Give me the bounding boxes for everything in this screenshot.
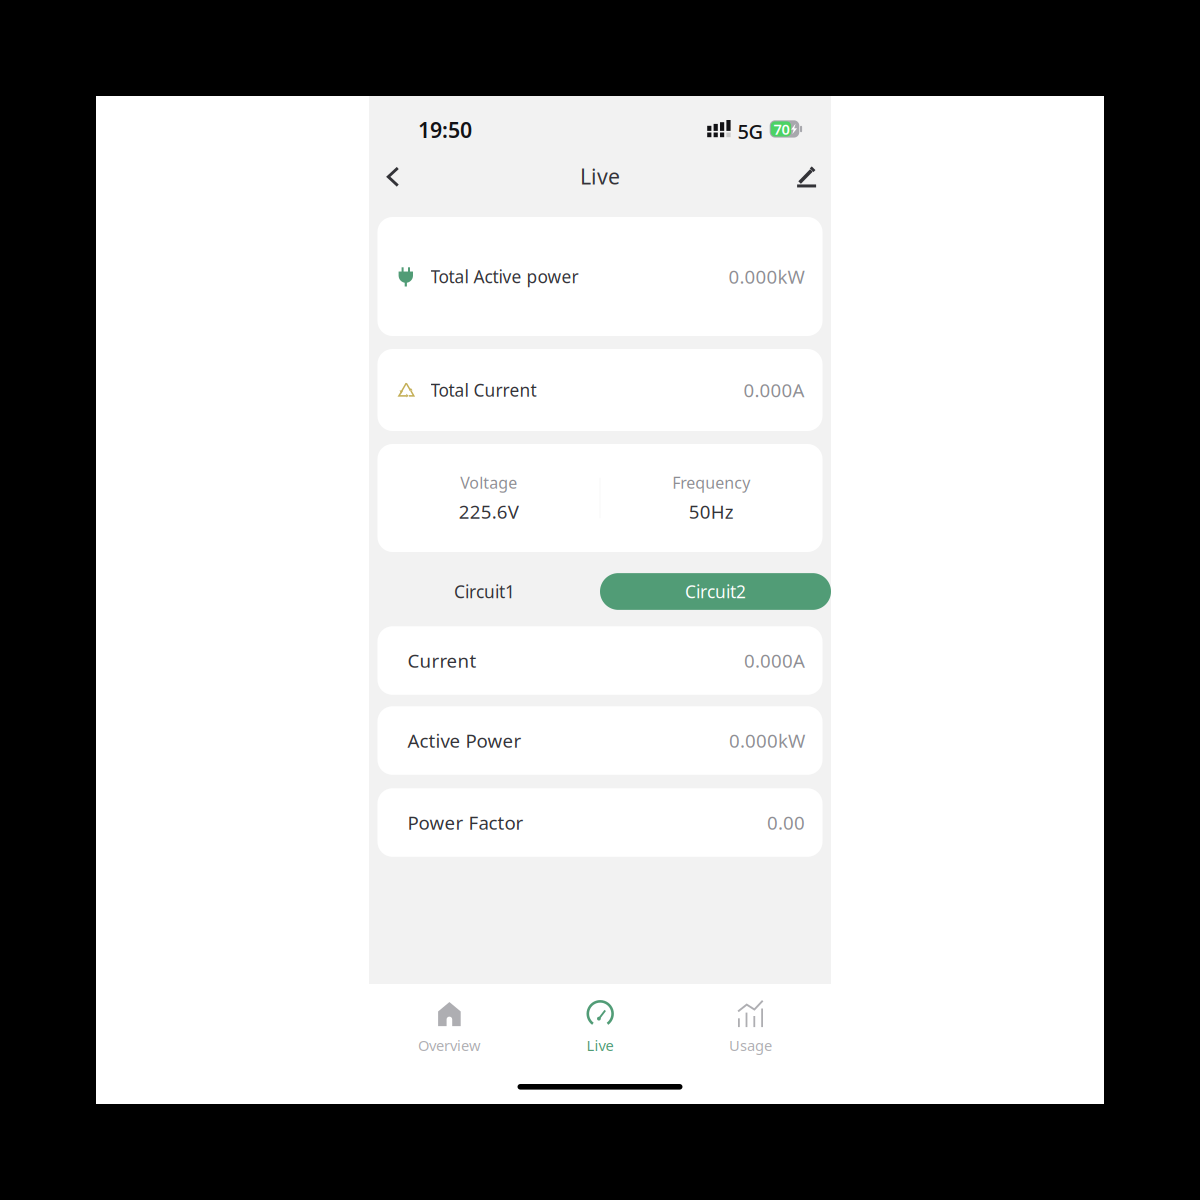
- staticText: Circuit1: [454, 580, 515, 603]
- staticText: Active Power: [407, 728, 521, 753]
- button[interactable]: Circuit2: [600, 573, 831, 610]
- staticText: Current: [407, 648, 476, 673]
- staticText: Frequency: [672, 472, 750, 493]
- button[interactable]: Current: [377, 626, 822, 695]
- staticText: Live: [586, 1035, 613, 1055]
- staticText: Total Current: [430, 378, 536, 401]
- staticText: 5G: [738, 118, 764, 145]
- staticText: 0.000A: [743, 378, 804, 402]
- staticText: Total Active power: [430, 265, 578, 288]
- staticText: Overview: [418, 1035, 481, 1055]
- staticText: 0.00: [767, 810, 805, 835]
- staticText: 225.6V: [459, 499, 519, 524]
- button[interactable]: Overview: [374, 991, 525, 1061]
- button[interactable]: Total Active power: [377, 217, 822, 336]
- staticText: Power Factor: [407, 810, 523, 835]
- staticText: 70: [774, 119, 790, 139]
- staticText: 19:50: [418, 115, 472, 144]
- staticText: 0.000kW: [728, 264, 804, 289]
- button[interactable]: Circuit1: [369, 573, 600, 610]
- button[interactable]: Power Factor: [377, 788, 822, 857]
- staticText: 0.000kW: [729, 728, 805, 753]
- button[interactable]: Active Power: [377, 706, 822, 775]
- staticText: Circuit2: [685, 580, 746, 603]
- staticText: Voltage: [460, 472, 517, 493]
- staticText: Usage: [729, 1035, 772, 1055]
- button[interactable]: Live: [525, 991, 675, 1061]
- staticText: Live: [580, 162, 620, 190]
- staticText: 50Hz: [689, 499, 734, 524]
- staticText: 0.000A: [744, 648, 805, 673]
- button[interactable]: Total Current: [377, 349, 822, 431]
- button[interactable]: Usage: [675, 991, 826, 1061]
